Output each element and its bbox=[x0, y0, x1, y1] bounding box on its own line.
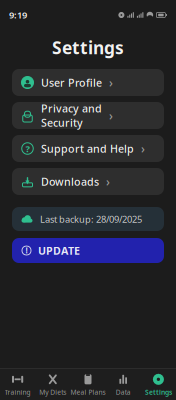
staticText: ? bbox=[25, 142, 29, 155]
staticText: › bbox=[109, 74, 113, 90]
staticText: Training bbox=[5, 388, 31, 397]
button[interactable]: Privacy and Security bbox=[12, 102, 164, 129]
staticText: Support and Help bbox=[41, 141, 134, 156]
staticText: › bbox=[141, 140, 145, 156]
staticText: User Profile bbox=[41, 75, 102, 90]
staticText: ▾ bbox=[25, 177, 29, 186]
button[interactable]: ! bbox=[12, 238, 164, 263]
staticText: Settings bbox=[52, 36, 124, 59]
staticText: Last backup: 28/09/2025 bbox=[40, 213, 142, 225]
staticText: My Diets bbox=[39, 388, 66, 397]
button[interactable]: ▾ bbox=[12, 168, 164, 195]
button[interactable]: Settings bbox=[141, 374, 176, 396]
staticText: ! bbox=[25, 245, 27, 256]
staticText: › bbox=[106, 173, 110, 189]
staticText: Downloads bbox=[41, 174, 99, 189]
staticText: Privacy and Security bbox=[41, 101, 102, 130]
button[interactable]: User Profile bbox=[12, 69, 164, 96]
staticText: 9:19 bbox=[9, 9, 27, 21]
staticText: › bbox=[109, 107, 113, 123]
staticText: UPDATE bbox=[38, 243, 80, 258]
button[interactable]: My Diets bbox=[35, 374, 70, 396]
staticText: Data bbox=[116, 388, 131, 397]
button[interactable]: ? bbox=[12, 135, 164, 162]
button[interactable]: Training bbox=[0, 374, 35, 396]
staticText: Settings bbox=[145, 388, 172, 397]
staticText: Meal Plans bbox=[70, 388, 105, 397]
button[interactable]: Meal Plans bbox=[70, 374, 106, 396]
button[interactable]: Data bbox=[106, 374, 141, 396]
